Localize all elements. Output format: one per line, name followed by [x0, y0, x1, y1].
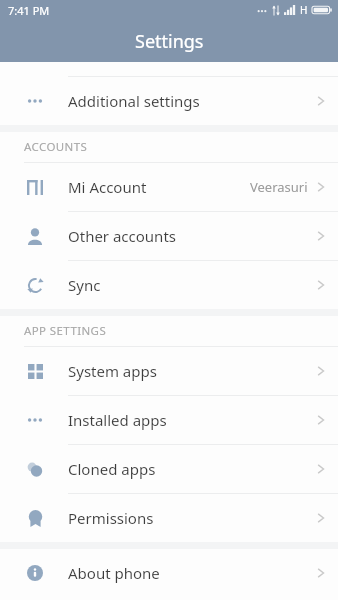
- button[interactable]: Cloned apps: [0, 444, 338, 493]
- staticText: Installed apps: [68, 410, 167, 430]
- button[interactable]: Mi Account: [0, 163, 338, 211]
- staticText: Other accounts: [68, 226, 176, 246]
- button[interactable]: Other accounts: [0, 211, 338, 260]
- staticText: Mi Account: [68, 177, 147, 197]
- staticText: Cloned apps: [68, 459, 156, 479]
- staticText: APP SETTINGS: [24, 323, 107, 339]
- button[interactable]: System apps: [0, 347, 338, 395]
- button[interactable]: About phone: [0, 549, 338, 597]
- button[interactable]: Installed apps: [0, 395, 338, 444]
- staticText: About phone: [68, 563, 160, 583]
- staticText: Settings: [135, 29, 204, 54]
- staticText: Additional settings: [68, 91, 200, 111]
- staticText: Veerasuri: [250, 178, 308, 196]
- staticText: Sync: [68, 275, 101, 295]
- staticText: ACCOUNTS: [24, 139, 88, 155]
- staticText: H: [300, 3, 308, 17]
- button[interactable]: Additional settings: [0, 76, 338, 125]
- staticText: System apps: [68, 361, 157, 381]
- button[interactable]: Permissions: [0, 493, 338, 542]
- staticText: Permissions: [68, 508, 154, 528]
- button[interactable]: Sync: [0, 260, 338, 309]
- staticText: 7:41 PM: [8, 3, 50, 18]
